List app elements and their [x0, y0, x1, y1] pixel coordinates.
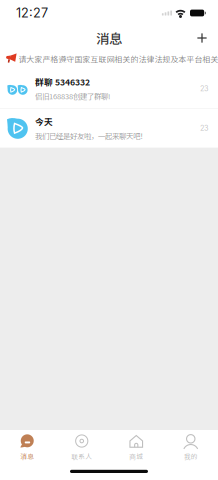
- button[interactable]: 请大家严格遵守国家互联网相关的法律法规及本平台相关规则: [0, 51, 218, 67]
- staticText: 消息: [96, 28, 122, 48]
- staticText: 23: [200, 84, 209, 93]
- staticText: 商城: [129, 451, 143, 461]
- button[interactable]: New chat: [190, 27, 214, 49]
- button[interactable]: 商城: [109, 434, 163, 461]
- staticText: 今天: [35, 115, 53, 128]
- staticText: 请大家严格遵守国家互联网相关的法律法规及本平台相关规则: [18, 53, 218, 65]
- staticText: 消息: [20, 451, 34, 461]
- button[interactable]: 今天: [0, 109, 218, 148]
- button[interactable]: 消息: [0, 434, 54, 461]
- button[interactable]: 联系人: [54, 434, 109, 461]
- staticText: 联系人: [71, 451, 92, 461]
- button[interactable]: 群聊 5346332: [0, 69, 218, 108]
- staticText: 群聊 5346332: [35, 76, 90, 88]
- button[interactable]: 我的: [163, 434, 218, 461]
- staticText: 我的: [184, 451, 198, 461]
- staticText: 我们已经是好友啦，一起来聊天吧！: [35, 130, 147, 141]
- staticText: 侣旧168838创建了群聊!: [35, 91, 110, 101]
- staticText: 12:27: [16, 5, 48, 21]
- staticText: 23: [200, 124, 209, 133]
